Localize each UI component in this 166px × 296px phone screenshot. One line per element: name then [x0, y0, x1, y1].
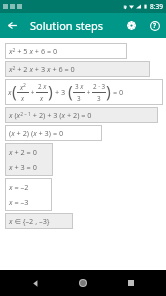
staticText: ): [106, 81, 111, 103]
button[interactable]: Settings: [120, 14, 143, 37]
staticText: (: [12, 81, 17, 103]
button[interactable]: Back: [22, 270, 48, 296]
button[interactable]: Back: [0, 13, 25, 38]
staticText: 2 · 3: [93, 82, 106, 91]
button[interactable]: Recents: [118, 270, 144, 296]
staticText: = 0: [111, 87, 124, 97]
staticText: x: [21, 94, 25, 103]
staticText: x: [8, 87, 12, 97]
button[interactable]: x (x2 – 1 + 2) + 3 (x + 2) = 0: [5, 107, 158, 123]
staticText: 8:39: [150, 2, 163, 11]
staticText: x + 3 = 0: [9, 162, 37, 172]
staticText: x2 + 2 x + 3 x + 6 = 0: [9, 64, 75, 74]
button[interactable]: (x + 2) (x + 3) = 0: [5, 125, 102, 141]
button[interactable]: x ∈ {–2 , –3}: [5, 213, 73, 229]
staticText: x2: [20, 82, 26, 91]
button[interactable]: Home: [70, 270, 96, 296]
staticText: ): [48, 81, 53, 103]
staticText: x ∈ {–2 , –3}: [9, 216, 50, 226]
staticText: x + 2 = 0: [9, 147, 37, 157]
staticText: x: [40, 94, 44, 103]
staticText: x = –2: [9, 182, 29, 192]
button[interactable]: x2 + 5 x + 6 = 0: [5, 43, 127, 59]
staticText: 2 x: [38, 82, 47, 91]
staticText: +: [85, 88, 92, 97]
button[interactable]: Help: [143, 14, 166, 37]
staticText: x = –3: [9, 197, 29, 207]
button[interactable]: x = –2: [5, 178, 52, 211]
staticText: 3: [97, 94, 101, 103]
staticText: + 3: [53, 87, 68, 97]
staticText: x2 + 5 x + 6 = 0: [9, 46, 58, 56]
staticText: x (x2 – 1 + 2) + 3 (x + 2) = 0: [9, 110, 92, 120]
button[interactable]: x2 + 2 x + 3 x + 6 = 0: [5, 61, 150, 77]
staticText: 3 x: [75, 82, 84, 91]
button[interactable]: x: [5, 79, 163, 105]
staticText: (: [68, 81, 73, 103]
button[interactable]: x + 2 = 0: [5, 143, 53, 176]
staticText: 3: [77, 94, 81, 103]
staticText: Solution steps: [30, 18, 103, 33]
staticText: ?: [153, 21, 157, 30]
staticText: (x + 2) (x + 3) = 0: [9, 128, 64, 138]
staticText: +: [29, 88, 36, 97]
